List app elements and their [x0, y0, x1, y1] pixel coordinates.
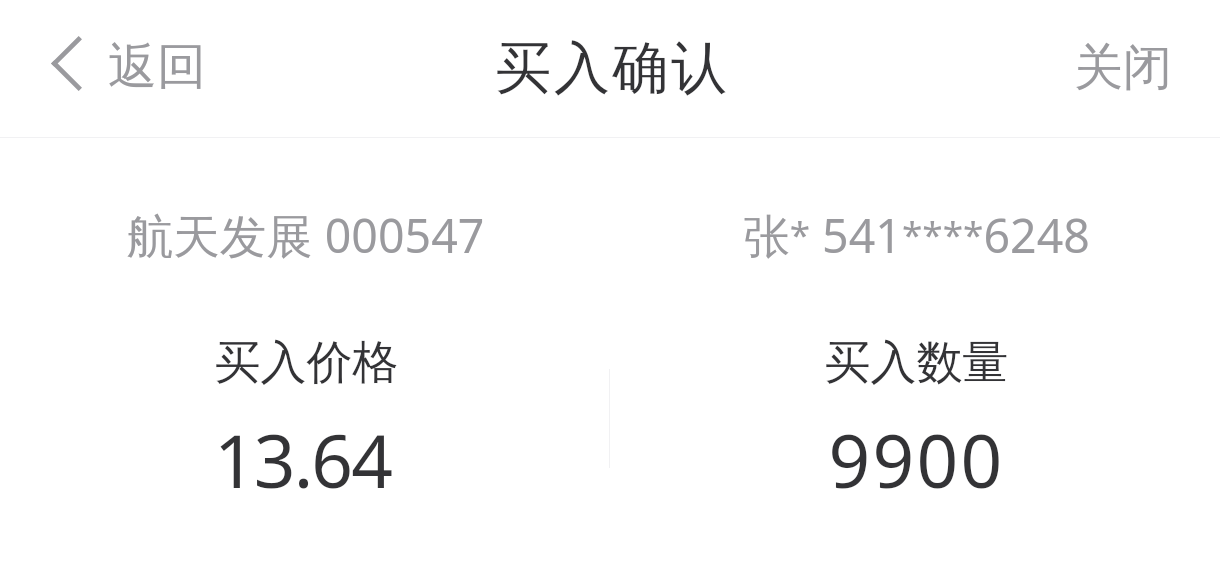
button[interactable]: 关闭 [1040, 20, 1220, 116]
staticText: 买入价格 [1, 334, 612, 392]
staticText: 9900 [612, 410, 1220, 509]
staticText: 13.64 [0, 410, 608, 509]
staticText: 关闭 [1074, 37, 1172, 99]
staticText: 张* 541****6248 [612, 203, 1220, 267]
staticText: 返回 [108, 36, 206, 98]
staticText: 航天发展 000547 [1, 203, 610, 267]
staticText: 买入数量 [612, 334, 1220, 392]
staticText: 买入确认 [495, 33, 730, 104]
other: Back [52, 37, 81, 90]
button[interactable]: Back [32, 15, 220, 111]
